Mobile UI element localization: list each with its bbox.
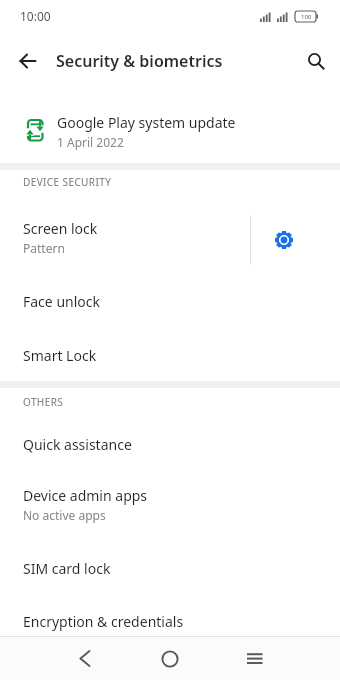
button[interactable]: Smart Lock: [0, 330, 340, 381]
staticText: Device admin apps: [23, 486, 148, 505]
button[interactable]: [292, 37, 340, 85]
staticText: SIM card lock: [23, 559, 111, 578]
staticText: Security & biometrics: [56, 50, 223, 72]
staticText: DEVICE SECURITY: [23, 175, 112, 189]
button[interactable]: Quick assistance: [0, 416, 340, 472]
staticText: Face unlock: [23, 292, 100, 311]
button[interactable]: [212, 637, 297, 680]
staticText: OTHERS: [23, 395, 64, 409]
button[interactable]: Encryption & credentials: [0, 599, 340, 643]
button[interactable]: [127, 637, 212, 680]
button[interactable]: Device admin apps: [0, 472, 340, 537]
staticText: 100: [301, 13, 312, 21]
staticText: 10:00: [20, 8, 51, 24]
button[interactable]: Screen lock: [0, 201, 250, 273]
button[interactable]: [251, 201, 340, 273]
button[interactable]: [43, 637, 127, 680]
staticText: 1 April 2022: [57, 134, 124, 150]
staticText: Encryption & credentials: [23, 612, 184, 631]
staticText: Screen lock: [23, 219, 98, 238]
staticText: Quick assistance: [23, 435, 132, 454]
staticText: Google Play system update: [57, 113, 236, 132]
staticText: No active apps: [23, 507, 106, 523]
button[interactable]: Google Play system update: [0, 100, 340, 163]
button[interactable]: Face unlock: [0, 273, 340, 330]
button[interactable]: SIM card lock: [0, 537, 340, 599]
button[interactable]: [0, 33, 56, 89]
staticText: Pattern: [23, 240, 65, 256]
staticText: Smart Lock: [23, 346, 97, 365]
